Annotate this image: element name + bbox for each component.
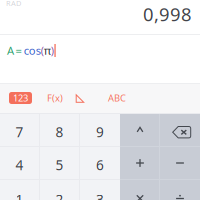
staticText: 6 [96,156,104,174]
button[interactable]: 123 [9,92,32,104]
button[interactable]: Multiply [120,180,160,200]
staticText: 0,998 [143,1,192,27]
staticText: A [7,43,14,58]
staticText: ) [51,43,54,58]
staticText: 1 [15,190,23,200]
button[interactable]: 4 [0,147,39,179]
button[interactable]: 9 [80,114,120,146]
button[interactable]: 1 [0,180,39,200]
staticText: 123 [13,92,28,104]
staticText: F(x) [47,92,63,104]
staticText: 4 [15,156,23,174]
button[interactable]: 2 [40,180,79,200]
staticText: 2 [55,190,63,200]
button[interactable]: Power [120,114,160,146]
button[interactable]: 5 [40,147,79,179]
button[interactable]: Angle [74,93,86,104]
staticText: 3 [96,190,104,200]
button[interactable]: 6 [80,147,120,179]
staticText: 8 [55,123,63,141]
staticText: ( [41,43,44,58]
button[interactable]: F(x) [45,91,65,105]
button[interactable]: 7 [0,114,39,146]
staticText: 7 [15,123,23,141]
staticText: 5 [55,156,63,174]
staticText: 9 [96,123,104,141]
button[interactable]: Delete [160,114,200,146]
button[interactable]: 3 [80,180,120,200]
staticText: π [44,43,51,58]
button[interactable]: Divide [160,180,200,200]
staticText: cos [24,43,41,58]
button[interactable]: 8 [40,114,79,146]
staticText: = [16,43,22,58]
button[interactable]: Minus [160,147,200,179]
staticText: ABC [108,92,126,104]
button[interactable]: Plus [120,147,160,179]
button[interactable]: ABC [105,91,129,105]
staticText: RAD [6,0,21,8]
